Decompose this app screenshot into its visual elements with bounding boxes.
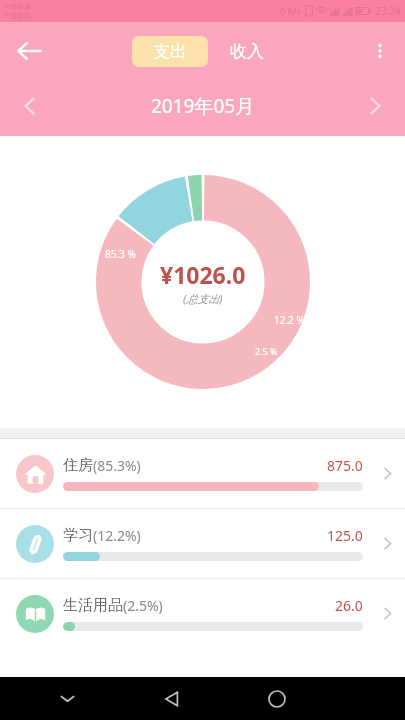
button[interactable]: 支出 [132, 36, 208, 67]
staticText: 23:24 [375, 4, 401, 18]
button[interactable]: Next month [355, 86, 395, 126]
staticText: 0 K/s [280, 5, 301, 17]
button[interactable]: Home [255, 677, 299, 720]
button[interactable]: Back [150, 677, 194, 720]
button[interactable]: Previous month [10, 86, 50, 126]
staticText: 生活用品 [63, 596, 123, 615]
staticText: 中国联通 [3, 2, 31, 11]
staticText: 收入 [230, 41, 264, 62]
button[interactable]: 住房 [0, 439, 405, 508]
staticText: 住房 [63, 456, 93, 475]
staticText: (12.2%) [93, 526, 141, 545]
staticText: 2.5 % [255, 345, 278, 357]
staticText: 支出 [153, 41, 187, 62]
staticText: 12.2 % [274, 313, 305, 327]
staticText: (2.5%) [123, 596, 163, 615]
button[interactable]: Back [8, 30, 50, 72]
staticText: 26.0 [335, 596, 363, 615]
staticText: 中国移动 [3, 11, 31, 20]
staticText: 125.0 [327, 526, 363, 545]
staticText: 2019年05月 [151, 93, 255, 119]
button[interactable]: 生活用品 [0, 579, 405, 648]
staticText: ¥1026.0 [160, 259, 246, 290]
button[interactable]: 收入 [220, 36, 274, 67]
staticText: 85.3 % [105, 247, 136, 261]
button[interactable]: Hide keyboard [45, 677, 89, 720]
staticText: 875.0 [327, 456, 363, 475]
staticText: (85.3%) [93, 456, 141, 475]
staticText: 学习 [63, 526, 93, 545]
button[interactable]: More options [361, 32, 399, 70]
button[interactable]: 学习 [0, 509, 405, 578]
staticText: (总支出) [183, 291, 223, 306]
